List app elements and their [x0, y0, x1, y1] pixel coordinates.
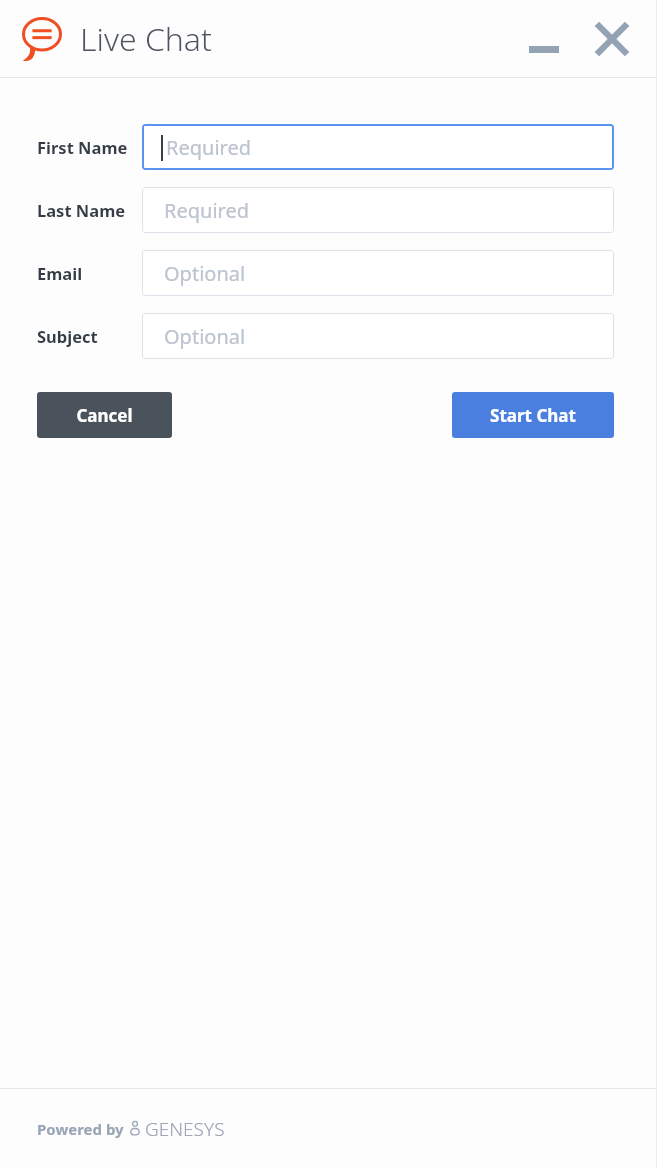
button[interactable]: Start Chat — [452, 392, 614, 438]
staticText: Optional — [164, 260, 246, 287]
staticText: Required — [164, 197, 249, 224]
button[interactable]: Cancel — [37, 392, 172, 438]
staticText: Start Chat — [490, 404, 576, 427]
staticText: Required — [166, 134, 251, 161]
button[interactable]: Optional — [142, 313, 614, 359]
staticText: Subject — [37, 325, 98, 347]
staticText: Optional — [164, 323, 246, 350]
staticText: Email — [37, 262, 83, 284]
button[interactable]: Powered by — [37, 1116, 225, 1142]
button[interactable]: Required — [142, 187, 614, 233]
staticText: First Name — [37, 136, 128, 158]
staticText: GENESYS — [145, 1116, 225, 1142]
staticText: Powered by — [37, 1119, 124, 1139]
staticText: Live Chat — [80, 17, 212, 61]
button[interactable]: Close — [589, 16, 635, 62]
button[interactable]: Required — [142, 124, 614, 170]
staticText: Cancel — [76, 404, 133, 427]
button[interactable]: Minimize — [521, 16, 567, 62]
staticText: Last Name — [37, 199, 126, 221]
button[interactable]: Optional — [142, 250, 614, 296]
